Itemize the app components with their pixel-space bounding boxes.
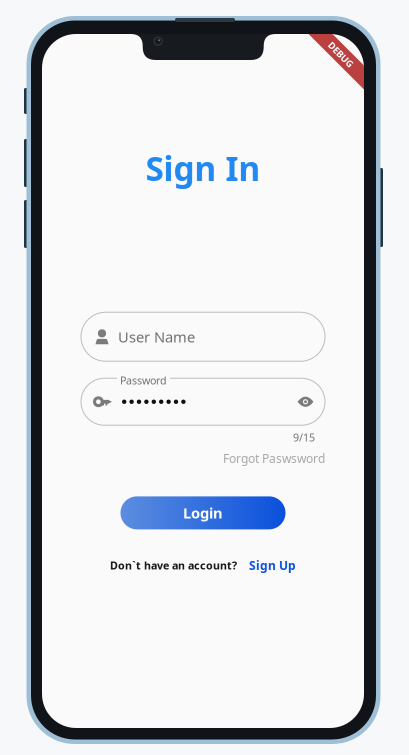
staticText: User Name [118,327,195,346]
staticText: Password [120,373,167,387]
staticText: Forgot Paswsword [223,450,325,466]
button[interactable]: Forgot Paswsword [223,450,325,466]
button[interactable]: Login [120,496,285,529]
staticText: Sign In [145,146,260,190]
staticText: Login [183,503,223,523]
button[interactable]: Password [81,378,325,425]
button[interactable]: User Name [81,312,325,361]
staticText: Sign Up [249,557,296,573]
button[interactable]: Sign Up [249,557,296,573]
staticText: Don`t have an account? [110,558,237,572]
staticText: DEBUG [325,48,357,61]
staticText: 9/15 [293,430,315,444]
